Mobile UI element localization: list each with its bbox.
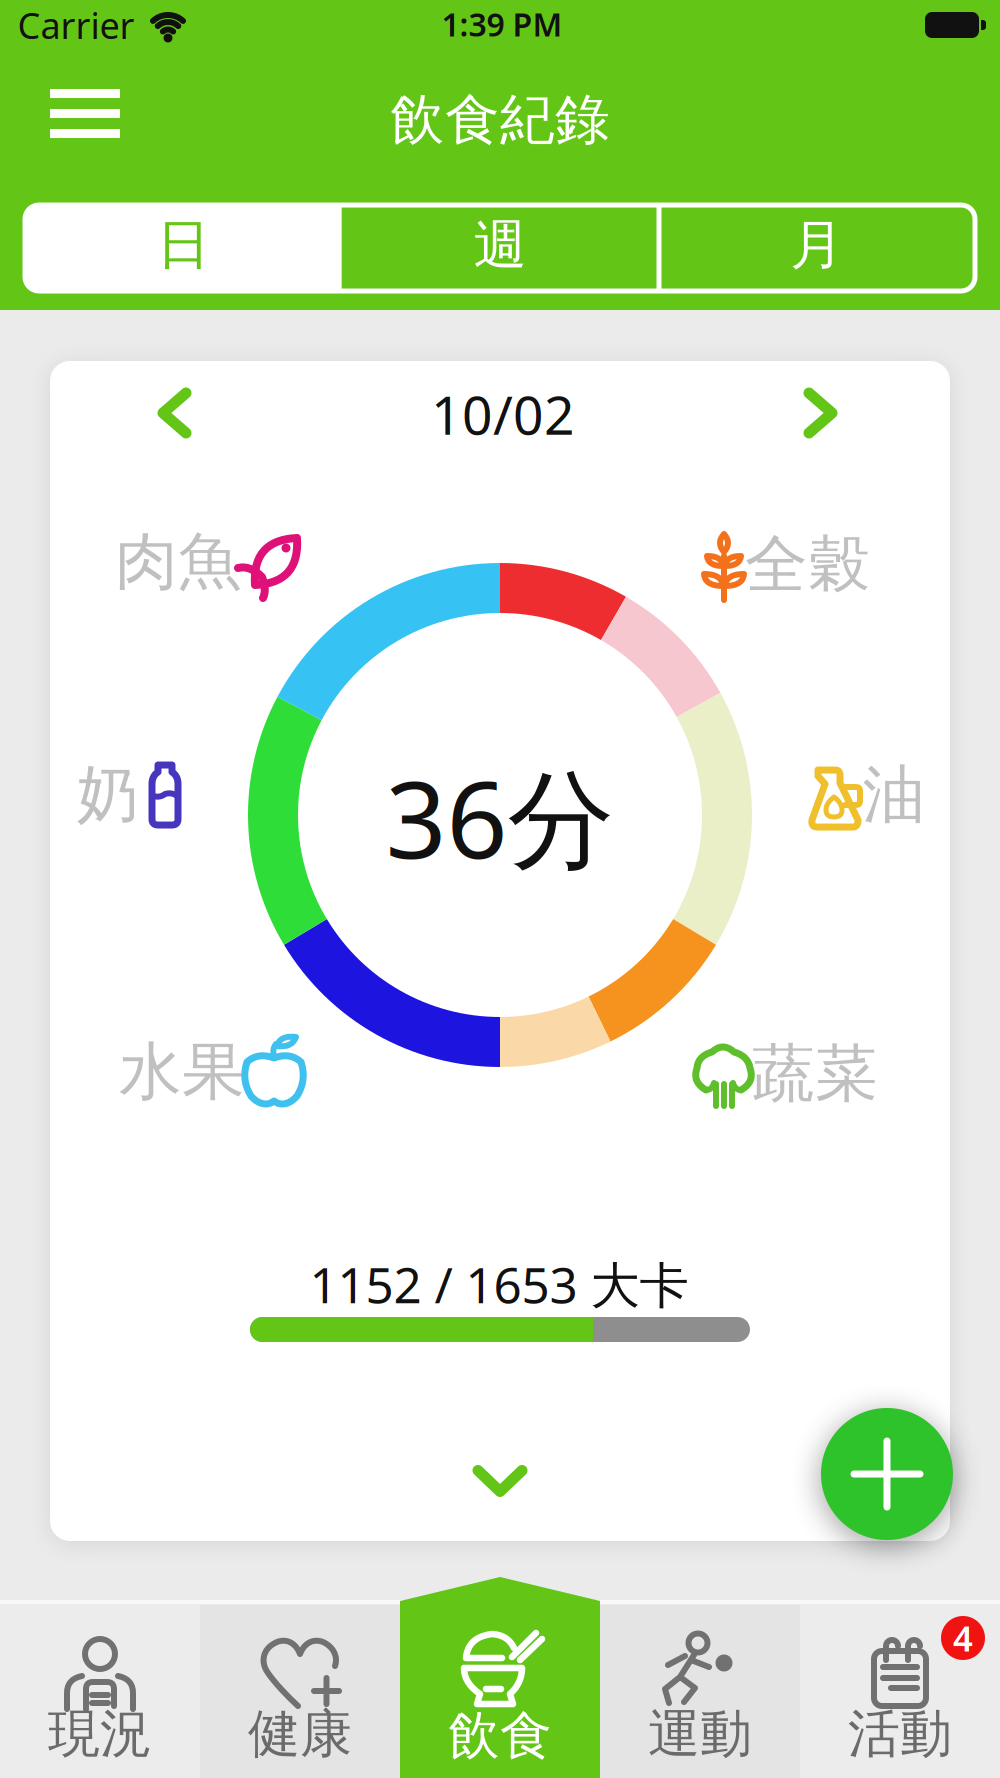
staticText: 現況 xyxy=(48,1702,152,1766)
staticText: 肉魚 xyxy=(115,523,241,600)
staticText: Carrier xyxy=(17,1,134,49)
staticText: 運動 xyxy=(648,1702,752,1766)
staticText: 週 xyxy=(473,212,526,278)
staticText: 飲食 xyxy=(448,1704,552,1768)
staticText: 4 xyxy=(953,1615,973,1661)
button[interactable] xyxy=(50,89,120,138)
staticText: 油 xyxy=(862,756,925,833)
staticText: 健康 xyxy=(248,1702,352,1766)
staticText: 月 xyxy=(790,212,843,278)
button[interactable]: 飲食 xyxy=(400,1577,600,1778)
button[interactable]: 運動 xyxy=(600,1605,800,1778)
staticText: 活動 xyxy=(848,1702,952,1766)
staticText: 蔬菜 xyxy=(752,1035,878,1112)
button[interactable]: 現況 xyxy=(0,1605,200,1778)
staticText: 全穀 xyxy=(745,526,871,603)
staticText: 日 xyxy=(157,212,210,278)
button[interactable] xyxy=(809,393,832,433)
staticText: 36分 xyxy=(385,746,614,888)
button[interactable]: 週 xyxy=(342,202,657,288)
staticText: 10/02 xyxy=(431,379,575,449)
button[interactable] xyxy=(821,1408,953,1540)
staticText: 1152 / 1653 大卡 xyxy=(309,1251,688,1317)
button[interactable] xyxy=(478,1470,522,1491)
button[interactable]: 健康 xyxy=(200,1605,400,1778)
button[interactable]: 日 xyxy=(25,202,341,288)
button[interactable] xyxy=(163,393,186,433)
staticText: 奶 xyxy=(76,756,139,833)
staticText: 水果 xyxy=(119,1033,245,1110)
button[interactable]: 活動 xyxy=(800,1605,1000,1778)
staticText: 1:39 PM xyxy=(441,3,562,45)
staticText: 飲食紀錄 xyxy=(390,86,610,153)
button[interactable]: 月 xyxy=(659,202,975,288)
